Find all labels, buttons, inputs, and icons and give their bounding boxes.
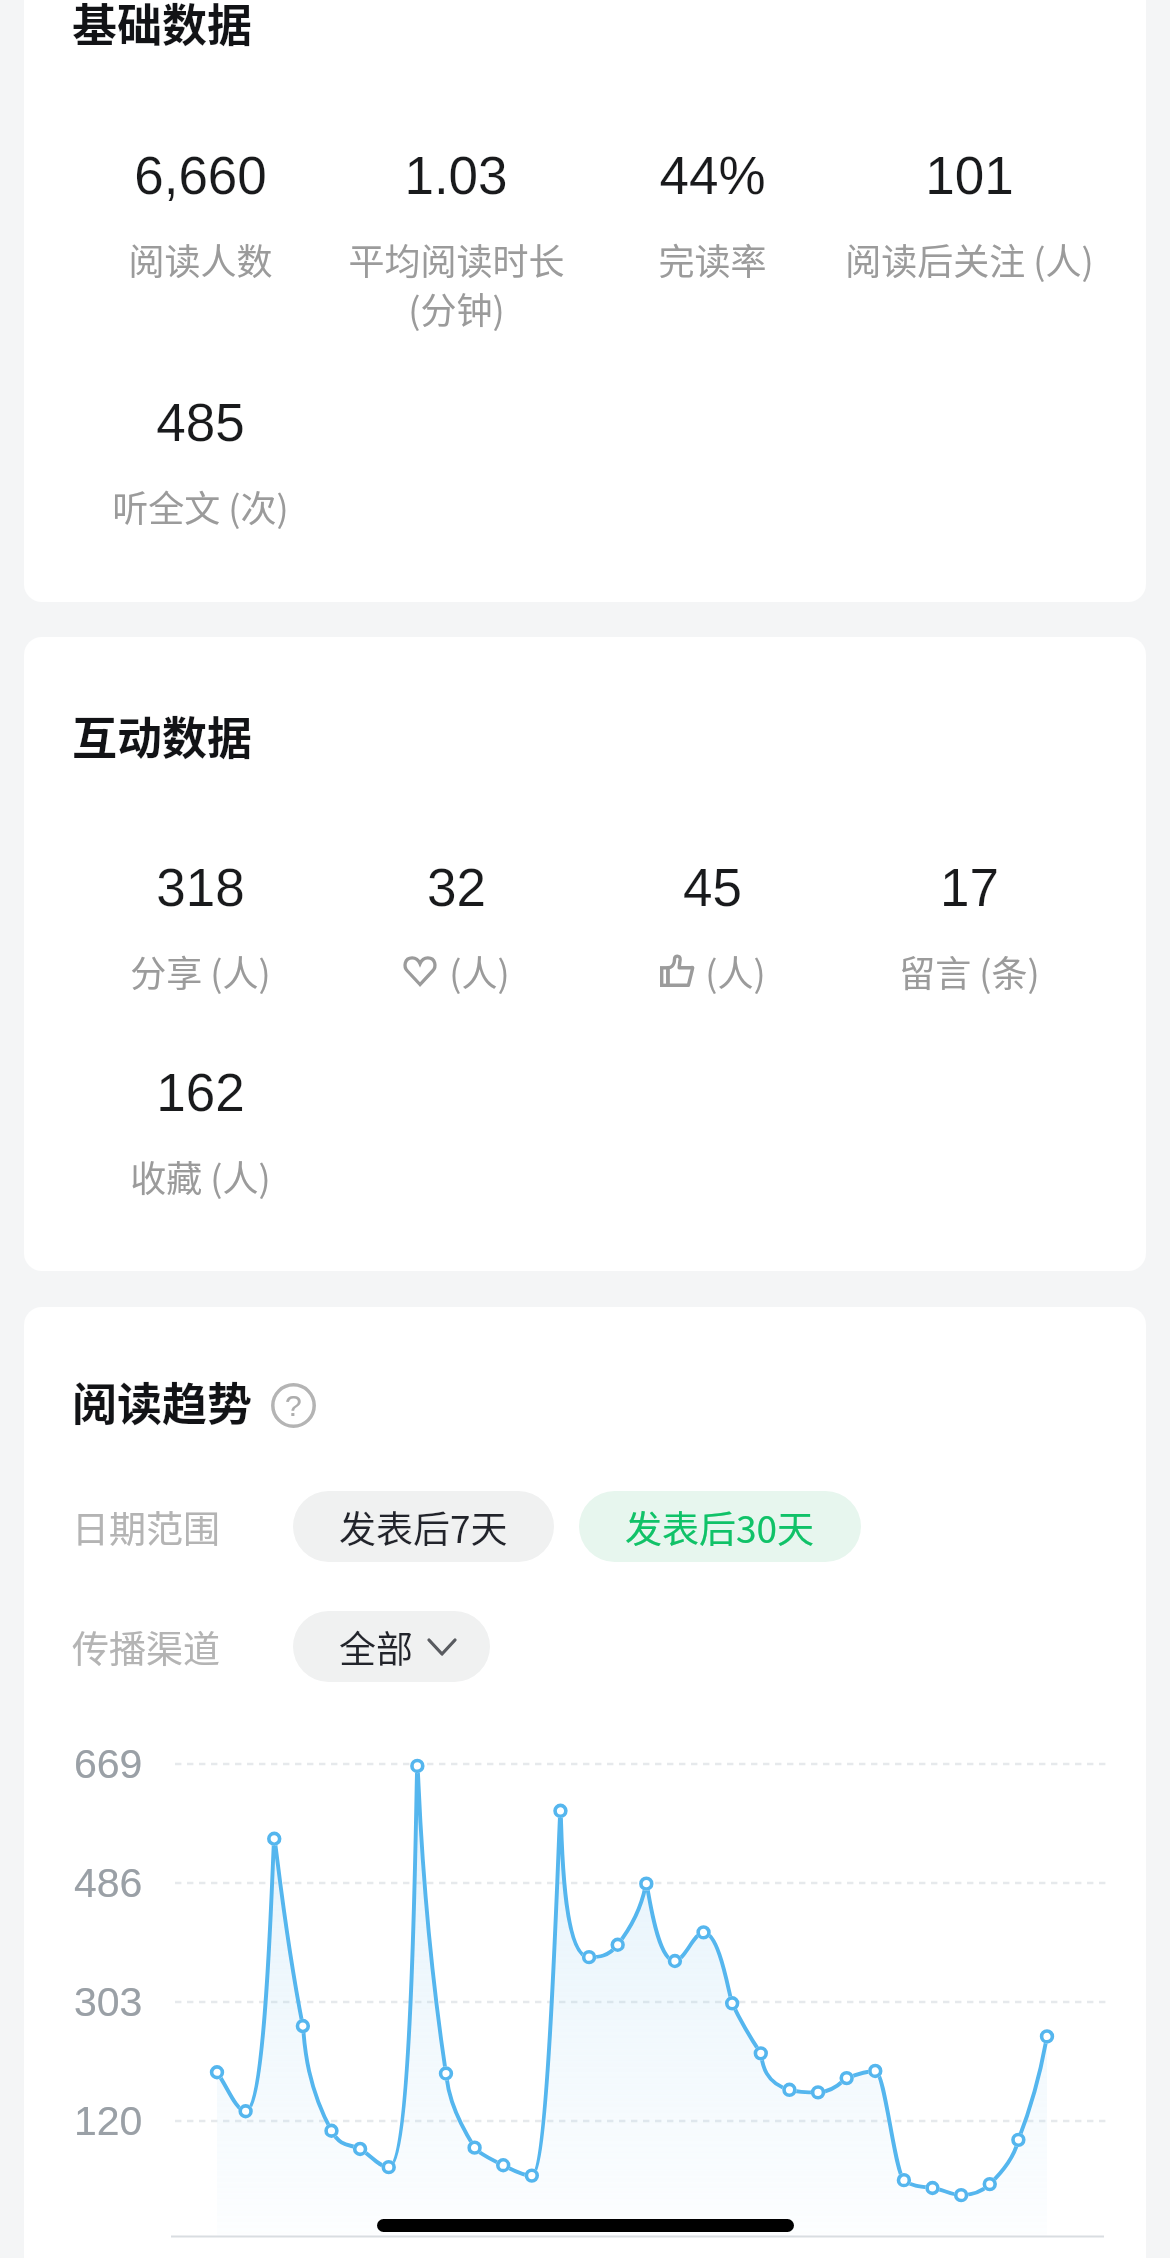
staticText: 发表后30天 — [625, 1500, 815, 1554]
button[interactable]: 全部 — [293, 1611, 490, 1682]
button[interactable]: 485 — [72, 393, 328, 532]
button[interactable]: 阅读趋势说明 — [271, 1383, 316, 1428]
staticText: 阅读后关注 (人) — [845, 233, 1094, 285]
button[interactable]: 45 — [584, 858, 841, 997]
staticText: 32 — [427, 858, 486, 917]
staticText: 发表后7天 — [339, 1500, 508, 1554]
staticText: 6,660 — [134, 146, 267, 205]
staticText: 1.03 — [404, 146, 508, 205]
staticText: 669 — [74, 1741, 143, 1787]
staticText: ? — [285, 1389, 302, 1423]
staticText: (人) — [705, 945, 766, 997]
button[interactable]: 6,660 — [72, 146, 328, 285]
staticText: 486 — [74, 1860, 143, 1906]
staticText: 485 — [156, 393, 245, 452]
button[interactable]: 101 — [841, 146, 1098, 285]
staticText: 完读率 — [658, 233, 767, 285]
staticText: 收藏 (人) — [130, 1150, 271, 1202]
staticText: 基础数据 — [72, 0, 253, 55]
button[interactable]: 162 — [72, 1063, 328, 1202]
staticText: 318 — [156, 858, 245, 917]
other: 点赞 — [660, 955, 693, 987]
staticText: 17 — [940, 858, 999, 917]
button[interactable]: 44% — [584, 146, 841, 285]
other: 在看 — [403, 956, 437, 986]
staticText: 162 — [156, 1063, 245, 1122]
staticText: 44% — [659, 146, 766, 205]
button[interactable]: 32 — [328, 858, 584, 997]
button[interactable]: 发表后30天 — [579, 1491, 861, 1562]
staticText: 传播渠道 — [72, 1620, 293, 1674]
staticText: 互动数据 — [72, 703, 253, 768]
staticText: 303 — [74, 1979, 143, 2025]
button[interactable]: 发表后7天 — [293, 1491, 554, 1562]
staticText: 120 — [74, 2098, 143, 2144]
staticText: 阅读人数 — [128, 233, 273, 285]
staticText: (人) — [449, 945, 510, 997]
staticText: 101 — [925, 146, 1014, 205]
staticText: 阅读趋势 — [72, 1369, 253, 1434]
staticText: 留言 (条) — [899, 945, 1040, 997]
staticText: 全部 — [339, 1620, 413, 1674]
staticText: 分享 (人) — [130, 945, 271, 997]
button[interactable]: 17 — [841, 858, 1098, 997]
staticText: 听全文 (次) — [112, 480, 289, 532]
staticText: 平均阅读时长 (分钟) — [348, 233, 565, 335]
button[interactable]: 1.03 — [328, 146, 584, 335]
button[interactable]: 318 — [72, 858, 328, 997]
staticText: 45 — [683, 858, 742, 917]
staticText: 日期范围 — [72, 1500, 293, 1554]
